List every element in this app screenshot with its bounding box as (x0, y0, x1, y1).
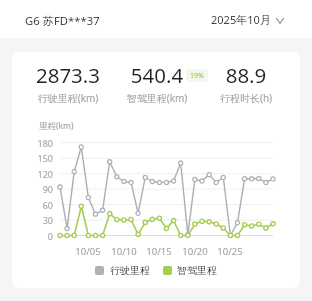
staticText: 行驶里程 (110, 264, 150, 276)
staticText: 智驾里程 (177, 264, 217, 276)
staticText: 540.4 (113, 61, 201, 89)
staticText: 2025年10月 (211, 12, 271, 27)
staticText: 10/05 (72, 245, 104, 258)
staticText: G6 苏FD***37 (25, 13, 100, 28)
staticText: 10/25 (214, 245, 246, 258)
staticText: 60 (28, 199, 53, 211)
staticText: 里程(km) (39, 120, 74, 132)
staticText: 2873.3 (24, 61, 112, 89)
staticText: 10/15 (143, 245, 175, 258)
staticText: 150 (28, 152, 53, 164)
button[interactable]: 2025年10月 (211, 12, 284, 27)
button[interactable]: 2873.3 (24, 61, 112, 101)
staticText: 180 (28, 137, 53, 149)
button[interactable]: 540.4 (113, 61, 201, 101)
staticText: 行程时长(h) (202, 91, 290, 105)
staticText: 行驶里程(km) (24, 91, 112, 105)
staticText: 30 (28, 214, 53, 226)
staticText: 88.9 (202, 61, 290, 89)
staticText: 19% (190, 71, 204, 81)
other: Select month (276, 15, 284, 25)
staticText: 0 (28, 230, 53, 242)
button[interactable]: 88.9 (202, 61, 290, 101)
staticText: 10/20 (179, 245, 211, 258)
staticText: 智驾里程(km) (113, 91, 201, 105)
staticText: 10/10 (108, 245, 140, 258)
staticText: 90 (28, 183, 53, 195)
staticText: 120 (28, 168, 53, 180)
